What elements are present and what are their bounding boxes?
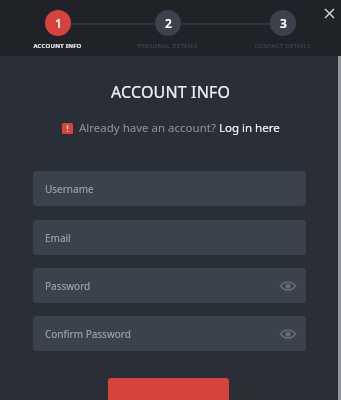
button[interactable]: Password bbox=[33, 268, 306, 303]
staticText: PERSONAL DETAILS bbox=[137, 42, 198, 50]
button[interactable]: Confirm Password bbox=[33, 316, 306, 351]
button[interactable]: 1 bbox=[7, 10, 107, 50]
button[interactable]: Show password bbox=[279, 277, 297, 295]
staticText: Already have an account? bbox=[79, 120, 219, 136]
button[interactable]: Close bbox=[318, 2, 341, 25]
button[interactable]: Username bbox=[33, 171, 306, 206]
staticText: 3 bbox=[280, 15, 287, 31]
staticText: Confirm Password bbox=[45, 327, 131, 341]
staticText: CONTACT DETAILS bbox=[254, 42, 311, 50]
staticText: Username bbox=[45, 182, 94, 196]
button[interactable]: Next bbox=[108, 378, 229, 400]
staticText: 2 bbox=[165, 15, 172, 31]
button[interactable]: Show password bbox=[279, 325, 297, 343]
button[interactable]: Log in here bbox=[219, 120, 280, 136]
staticText: Log in here bbox=[219, 120, 280, 136]
staticText: ACCOUNT INFO bbox=[33, 42, 82, 50]
button[interactable]: 3 bbox=[232, 10, 332, 50]
staticText: ACCOUNT INFO bbox=[0, 81, 341, 103]
staticText: Email bbox=[45, 231, 71, 245]
staticText: 1 bbox=[55, 15, 62, 31]
button[interactable]: Email bbox=[33, 220, 306, 255]
button[interactable]: 2 bbox=[117, 10, 217, 50]
staticText: Password bbox=[45, 279, 91, 293]
